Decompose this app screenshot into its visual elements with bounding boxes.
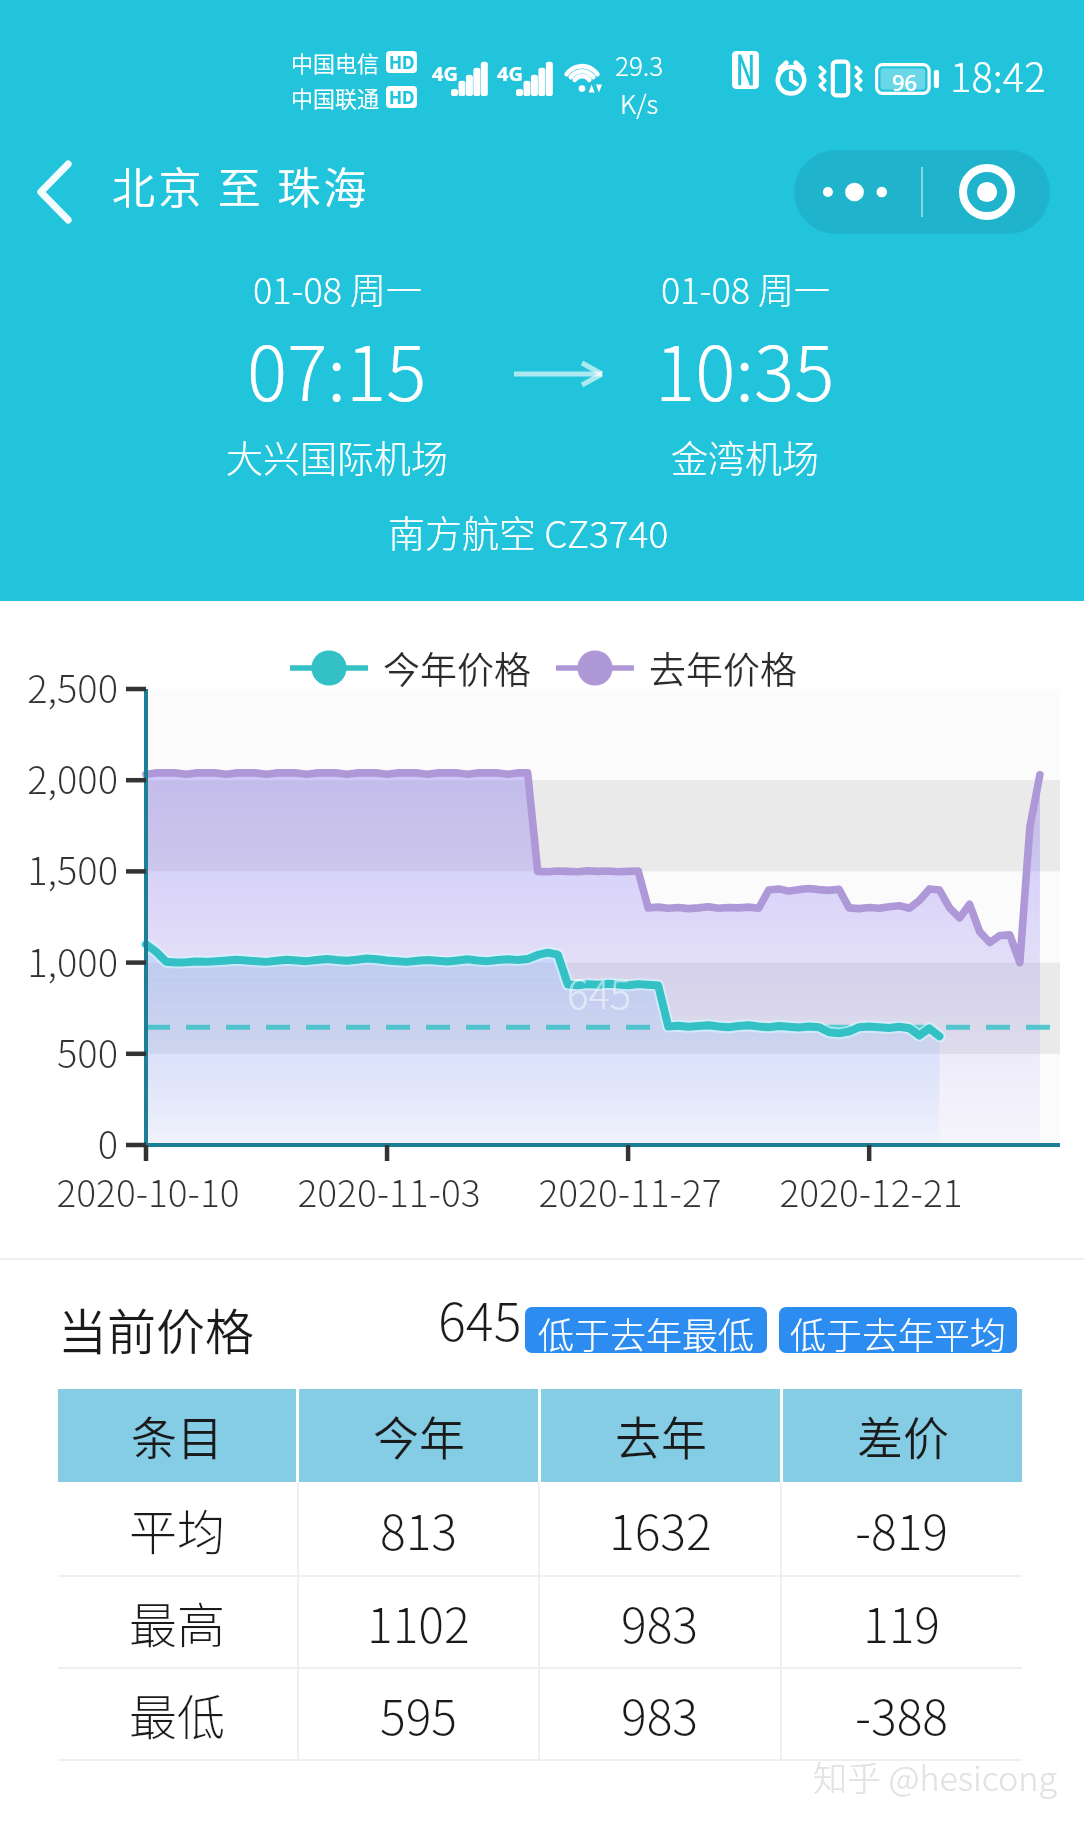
staticText: 平均: [129, 1494, 226, 1564]
staticText: -388: [855, 1679, 949, 1749]
staticText: 4G: [432, 60, 458, 87]
button[interactable]: Record: [923, 150, 1050, 234]
staticText: 2020-11-27: [480, 1164, 780, 1218]
button[interactable]: 低于去年平均: [779, 1307, 1017, 1353]
button[interactable]: 平均: [58, 1482, 1022, 1575]
staticText: 2,500: [0, 659, 118, 714]
button[interactable]: 最高: [58, 1577, 1022, 1667]
staticText: 条目: [131, 1402, 223, 1469]
staticText: 813: [380, 1494, 458, 1564]
staticText: 500: [0, 1024, 118, 1079]
staticText: 金湾机场: [671, 430, 819, 484]
staticText: 今年: [373, 1402, 465, 1469]
staticText: 10:35: [655, 314, 835, 423]
staticText: 1,500: [0, 841, 118, 896]
staticText: 1102: [367, 1587, 470, 1657]
staticText: 低于去年最低: [538, 1307, 755, 1353]
button[interactable]: 去年价格: [556, 641, 797, 695]
staticText: 最高: [129, 1587, 226, 1657]
staticText: 最低: [129, 1679, 226, 1749]
staticText: 2020-11-03: [239, 1164, 539, 1218]
staticText: HD: [389, 86, 415, 108]
staticText: 南方航空 CZ3740: [388, 505, 669, 559]
staticText: 知乎 @hesicong: [813, 1752, 1057, 1801]
staticText: 中国电信: [291, 46, 380, 78]
staticText: 983: [621, 1679, 699, 1749]
staticText: 中国联通: [291, 81, 380, 113]
button[interactable]: More options: [794, 150, 921, 234]
staticText: 4G: [497, 60, 523, 87]
staticText: 去年价格: [649, 641, 797, 695]
staticText: 2020-12-21: [721, 1164, 1021, 1218]
staticText: 今年价格: [383, 641, 531, 695]
staticText: 645: [567, 963, 632, 1021]
staticText: 29.3: [615, 46, 664, 84]
staticText: 1,000: [0, 933, 118, 988]
staticText: 595: [380, 1679, 458, 1749]
staticText: 大兴国际机场: [226, 430, 448, 484]
staticText: 01-08 周一: [661, 262, 830, 314]
staticText: 01-08 周一: [253, 262, 422, 314]
staticText: 低于去年平均: [790, 1307, 1007, 1353]
staticText: HD: [389, 51, 415, 73]
staticText: 18:42: [950, 46, 1046, 104]
staticText: 2,000: [0, 750, 118, 805]
staticText: 2020-10-10: [0, 1164, 298, 1218]
button[interactable]: 低于去年最低: [525, 1307, 767, 1353]
button[interactable]: Back: [0, 142, 112, 242]
staticText: -819: [855, 1494, 949, 1564]
staticText: 北京 至 珠海: [112, 154, 370, 216]
button[interactable]: 最低: [58, 1669, 1022, 1759]
staticText: 去年: [615, 1402, 707, 1469]
staticText: 119: [863, 1587, 941, 1657]
staticText: 645: [438, 1281, 522, 1356]
button[interactable]: 今年价格: [290, 641, 531, 695]
staticText: 0: [0, 1115, 118, 1170]
staticText: K/s: [620, 84, 659, 122]
staticText: 1632: [609, 1494, 712, 1564]
staticText: 07:15: [247, 314, 427, 423]
staticText: 当前价格: [58, 1293, 255, 1364]
staticText: 96: [892, 67, 918, 97]
staticText: 983: [621, 1587, 699, 1657]
staticText: 差价: [857, 1402, 949, 1469]
